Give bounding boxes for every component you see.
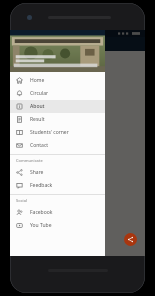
button[interactable]: Share [10,166,105,179]
staticText: Assistant Professor [26,77,58,82]
staticText: Feedback [30,182,53,189]
staticText: Share [30,169,44,176]
button[interactable]: Result [10,113,105,126]
button[interactable]: Contact [10,139,105,152]
button[interactable]: Share [124,233,137,246]
staticText: About [30,103,45,110]
staticText: Social [16,198,28,203]
staticText: Result [30,116,45,123]
staticText: Facebook [30,209,53,216]
staticText: xxxx@xxx.edu.in [26,101,54,106]
button[interactable]: Facebook [10,206,105,219]
staticText: Students' corner [30,129,69,136]
staticText: Circular [30,90,49,97]
staticText: You Tube [30,222,52,229]
staticText: XXXXX, M.Phil., Ph.D. [26,91,68,96]
staticText: Contact [30,142,49,149]
staticText: Communicate [16,158,43,163]
button[interactable]: About [10,100,105,113]
staticText: Computer Science [26,96,56,101]
staticText: Home [30,77,45,84]
staticText: xxxx@xxx.edu.in [26,64,54,69]
button[interactable] [10,30,105,72]
button[interactable]: Circular [10,87,105,100]
staticText: Dr. XXXX, M.Phil., NDMD [26,54,74,59]
button[interactable]: Feedback [10,179,105,192]
button[interactable]: Students' corner [10,126,105,139]
button[interactable]: You Tube [10,219,105,232]
button[interactable]: Home [10,74,105,87]
staticText: Computer Applications [26,59,64,64]
